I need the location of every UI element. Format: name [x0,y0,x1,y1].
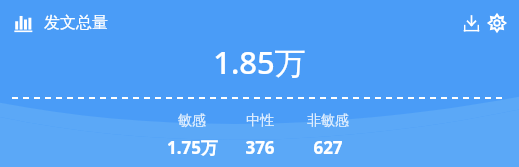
button[interactable]: 中性 [229,112,291,159]
button[interactable]: Download [459,11,483,35]
staticText: 中性 [246,112,274,130]
staticText: 1.85万 [213,41,306,83]
button[interactable]: 敏感 [155,112,229,159]
staticText: 发文总量 [44,13,108,33]
button[interactable]: Settings [485,11,509,35]
button[interactable]: 非敏感 [291,112,365,159]
staticText: 非敏感 [307,112,349,130]
staticText: 376 [245,136,275,159]
staticText: 1.75万 [167,136,218,159]
staticText: 敏感 [178,112,206,130]
staticText: 627 [313,136,343,159]
